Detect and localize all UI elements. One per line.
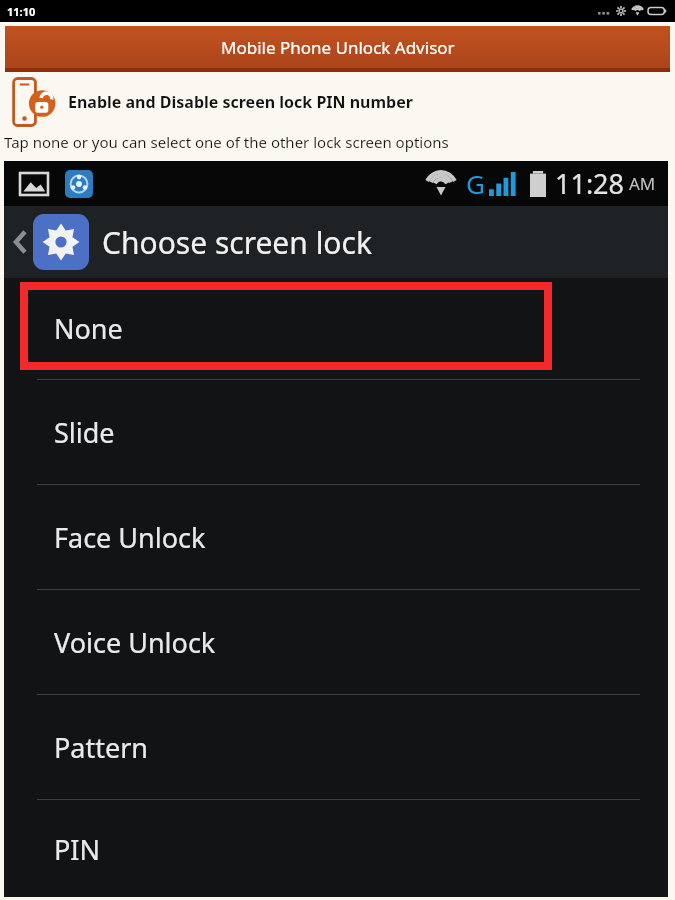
button[interactable]: Mobile Phone Unlock Advisor bbox=[5, 26, 670, 68]
button[interactable]: PIN bbox=[4, 798, 668, 897]
staticText: Voice Unlock bbox=[54, 624, 216, 661]
staticText: Tap none or you can select one of the ot… bbox=[4, 132, 449, 152]
button[interactable]: Back bbox=[4, 206, 668, 278]
button[interactable]: Voice Unlock bbox=[4, 588, 668, 693]
button[interactable]: Screen lock icon bbox=[0, 72, 675, 132]
staticText: Pattern bbox=[54, 729, 149, 766]
staticText: Choose screen lock bbox=[102, 222, 372, 263]
staticText: Enable and Disable screen lock PIN numbe… bbox=[68, 91, 413, 113]
button[interactable]: None bbox=[4, 278, 668, 378]
staticText: 11:28 bbox=[555, 165, 625, 202]
staticText: Slide bbox=[54, 414, 115, 451]
staticText: Face Unlock bbox=[54, 519, 206, 556]
button[interactable]: Slide bbox=[4, 378, 668, 483]
button[interactable]: Face Unlock bbox=[4, 483, 668, 588]
button[interactable]: Pattern bbox=[4, 693, 668, 798]
staticText: 11:10 bbox=[7, 4, 36, 19]
other: Back bbox=[12, 225, 30, 259]
staticText: AM bbox=[629, 172, 656, 195]
staticText: Mobile Phone Unlock Advisor bbox=[221, 36, 455, 59]
other: Screen lock icon bbox=[11, 77, 63, 127]
staticText: G bbox=[466, 166, 485, 201]
staticText: PIN bbox=[54, 831, 101, 868]
staticText: None bbox=[54, 310, 123, 347]
